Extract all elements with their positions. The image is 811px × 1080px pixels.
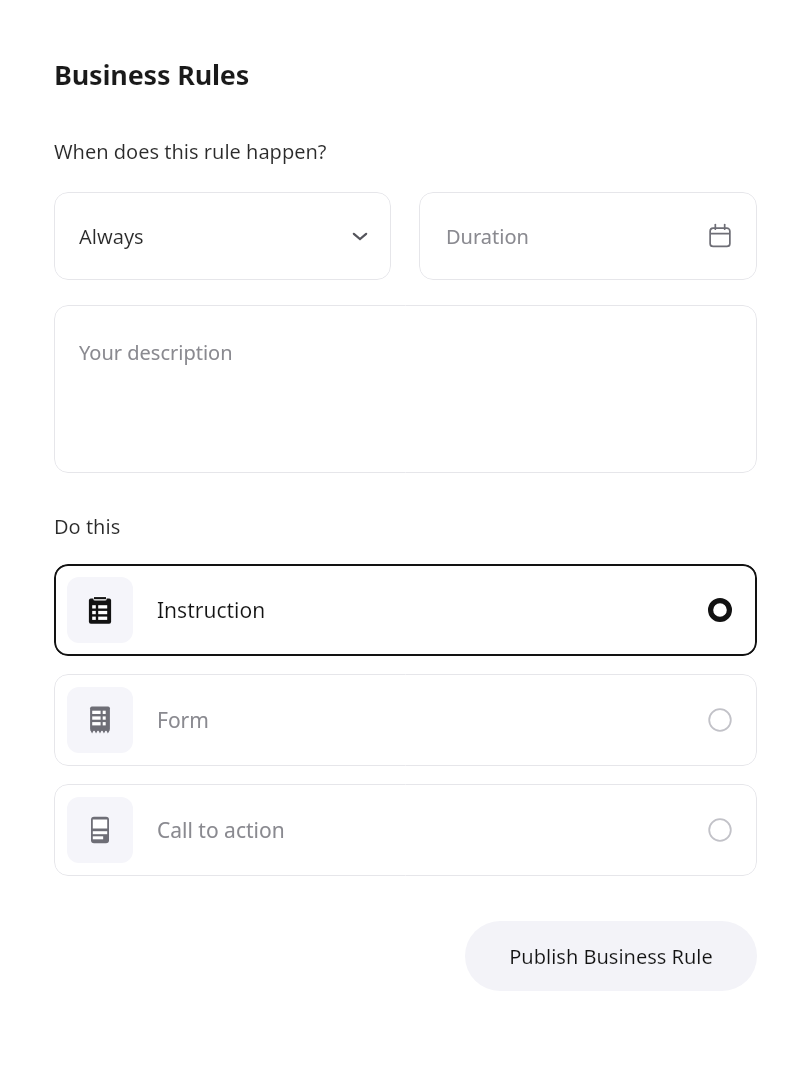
staticText: Publish Business Rule [509,943,713,970]
staticText: Your description [79,339,233,366]
other: Pick date [705,221,735,251]
staticText: Business Rules [54,56,250,93]
button[interactable]: Call to action [54,784,757,876]
staticText: Duration [446,223,529,250]
staticText: Do this [54,513,121,540]
staticText: When does this rule happen? [54,138,327,165]
staticText: Always [79,223,144,250]
staticText: Form [157,706,209,735]
staticText: Call to action [157,816,285,845]
button[interactable]: Always [54,192,391,280]
button[interactable]: Your description [54,305,757,473]
button[interactable]: Form [54,674,757,766]
staticText: Instruction [157,596,266,625]
button[interactable]: Instruction [54,564,757,656]
button[interactable]: Duration [419,192,757,280]
button[interactable]: Publish Business Rule [465,921,757,991]
